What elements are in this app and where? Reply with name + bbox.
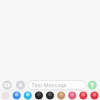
button[interactable]: Take photo [3,81,12,90]
button[interactable]: Text Message [28,81,86,90]
button[interactable]: App 9 [89,91,100,99]
button[interactable]: App 7 [67,91,78,99]
button[interactable]: App 3 [22,91,33,99]
button[interactable]: Send [88,81,97,90]
button[interactable]: App 4 [33,91,44,99]
button[interactable]: App 2 [11,91,22,99]
button[interactable]: App 6 [56,91,67,99]
button[interactable]: iMessage apps [16,81,25,90]
button[interactable]: App 1 [0,91,11,99]
staticText: Text Message [32,82,67,89]
button[interactable]: App 8 [78,91,89,99]
button[interactable]: App 5 [44,91,55,99]
